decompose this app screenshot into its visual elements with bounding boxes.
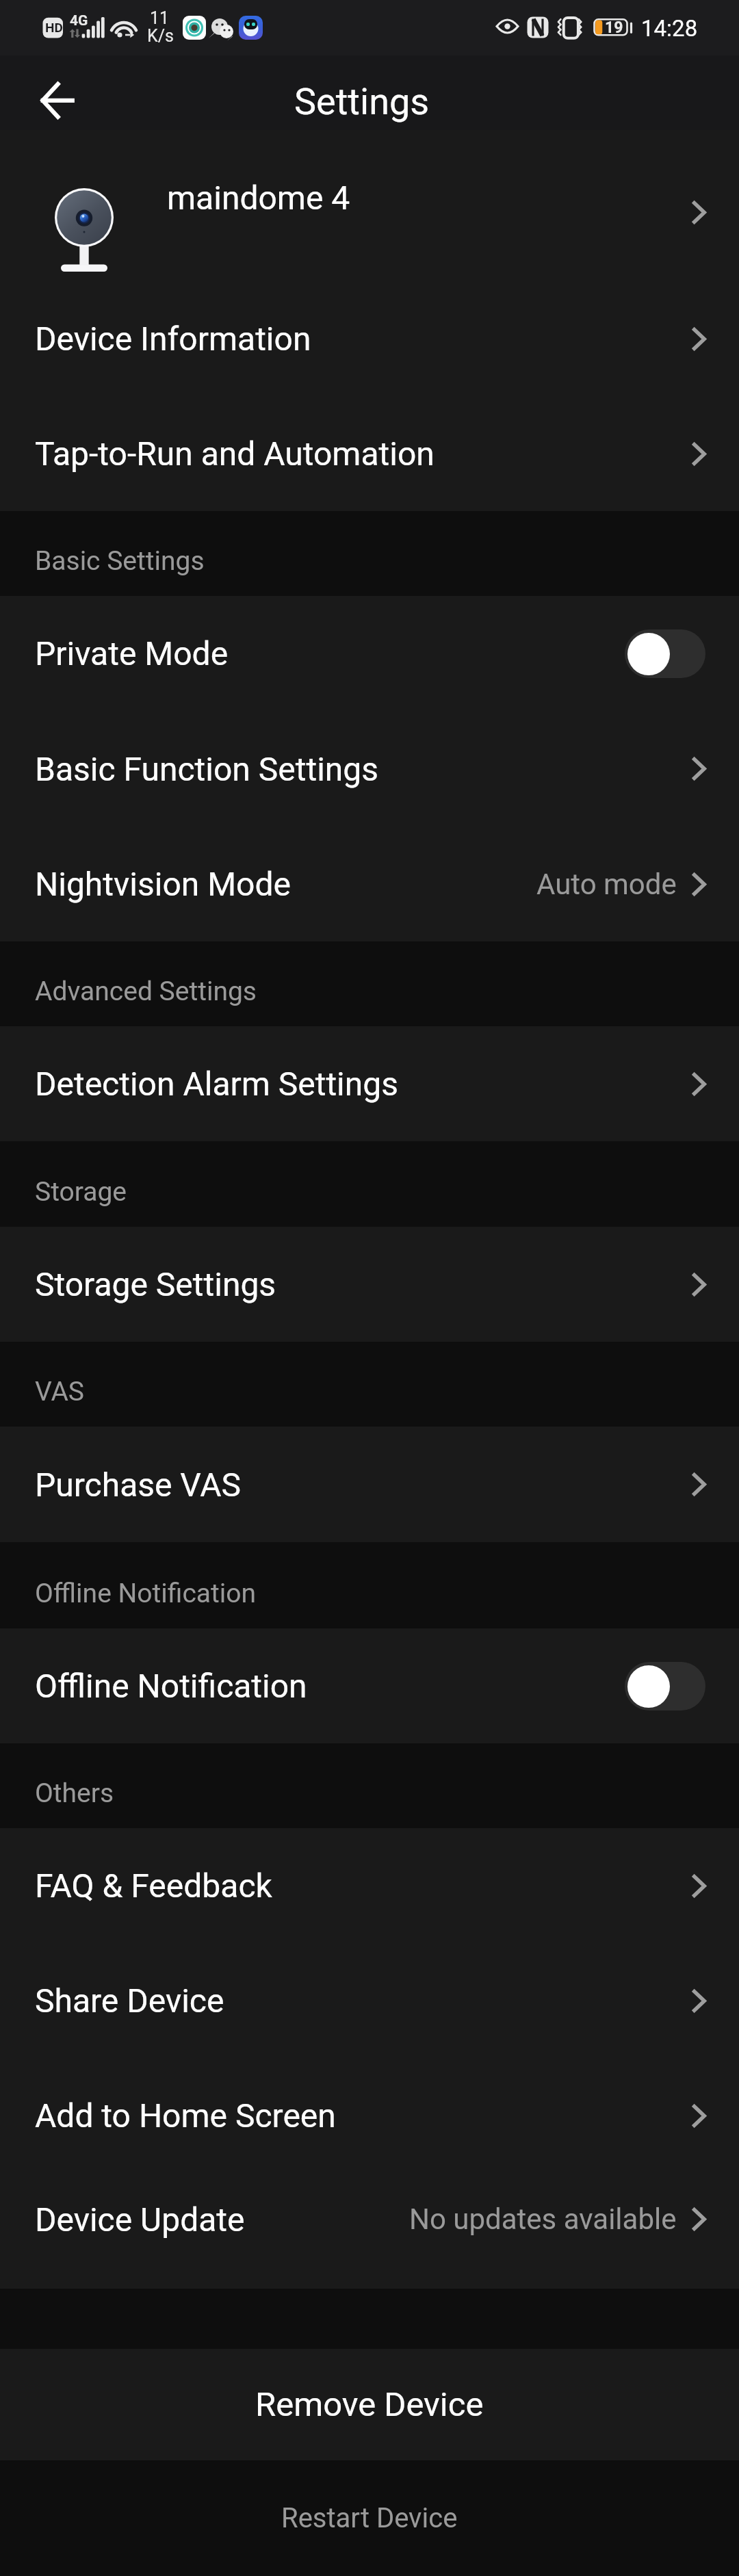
staticText: Offline Notification [35, 1667, 307, 1705]
staticText: Advanced Settings [35, 976, 257, 1007]
button[interactable]: Nightvision Mode [0, 827, 739, 941]
staticText: K/s [147, 26, 174, 46]
staticText: Purchase VAS [35, 1466, 241, 1504]
staticText: Storage Settings [35, 1265, 276, 1303]
staticText: Auto mode [536, 868, 677, 901]
staticText: maindome 4 [167, 179, 350, 217]
button[interactable]: Share Device [0, 1943, 739, 2058]
staticText: Storage [35, 1176, 127, 1208]
staticText: Basic Settings [35, 545, 205, 577]
staticText: Others [35, 1778, 114, 1809]
staticText: Detection Alarm Settings [35, 1065, 399, 1103]
staticText: Settings [294, 80, 430, 123]
staticText: Tap-to-Run and Automation [35, 434, 435, 473]
staticText: Add to Home Screen [35, 2096, 336, 2135]
button[interactable]: Detection Alarm Settings [0, 1026, 739, 1141]
button[interactable]: FAQ & Feedback [0, 1828, 739, 1943]
button[interactable]: Remove Device [0, 2349, 739, 2460]
staticText: Share Device [35, 1981, 224, 2020]
button[interactable]: Back [10, 64, 78, 122]
staticText: Device Information [35, 320, 311, 358]
staticText: 19 [605, 18, 623, 37]
staticText: 11 [150, 8, 170, 28]
button[interactable]: Device Information [0, 281, 739, 396]
button[interactable]: Tap-to-Run and Automation [0, 396, 739, 511]
button[interactable]: Storage Settings [0, 1227, 739, 1342]
staticText: VAS [35, 1376, 85, 1407]
button[interactable]: Basic Function Settings [0, 711, 739, 827]
staticText: Basic Function Settings [35, 750, 379, 788]
staticText: HD [45, 20, 63, 35]
button[interactable]: Restart Device [0, 2460, 739, 2576]
staticText: No updates available [409, 2202, 677, 2236]
staticText: Offline Notification [35, 1578, 257, 1609]
button[interactable]: Private Mode [0, 596, 739, 711]
staticText: Device Update [35, 2200, 245, 2239]
staticText: Private Mode [35, 634, 229, 673]
button[interactable]: Device Update [0, 2173, 739, 2289]
staticText: 4G [70, 12, 88, 29]
button[interactable]: Offline Notification [0, 1628, 739, 1743]
staticText: Nightvision Mode [35, 865, 291, 903]
staticText: 14:28 [641, 15, 698, 42]
button[interactable]: Add to Home Screen [0, 2058, 739, 2173]
staticText: Restart Device [281, 2502, 458, 2534]
button[interactable]: maindome 4 [0, 130, 739, 281]
staticText: Remove Device [255, 2385, 484, 2424]
staticText: FAQ & Feedback [35, 1866, 272, 1905]
button[interactable]: Purchase VAS [0, 1427, 739, 1542]
